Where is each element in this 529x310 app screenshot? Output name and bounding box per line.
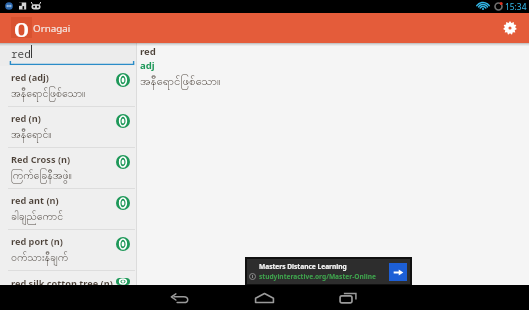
staticText: red silk cotton tree (n) [11, 277, 113, 285]
button[interactable]: Pronounce [116, 196, 130, 210]
button[interactable]: Settings [495, 13, 525, 43]
button[interactable]: Advertisement [246, 258, 411, 285]
button[interactable]: Pronounce [116, 278, 130, 285]
staticText: red (n) [11, 112, 41, 125]
staticText: အနီရောင်ဖြစ်သော။ [11, 87, 86, 103]
staticText: အနီရောင်ဖြစ်သော။ [140, 74, 221, 91]
staticText: red (adj) [11, 71, 49, 84]
staticText: Ornagai [33, 22, 71, 35]
staticText: red [11, 46, 31, 61]
button[interactable]: red (n) [0, 107, 136, 148]
staticText: red ant (n) [11, 194, 59, 207]
staticText: ဝက်သားနီချက် [11, 251, 69, 267]
button[interactable]: Red Cross (n) [0, 148, 136, 189]
button[interactable]: Pronounce [116, 73, 130, 87]
staticText: red port (n) [11, 235, 63, 248]
staticText: adj [140, 59, 155, 72]
staticText: 15:34 [505, 1, 527, 12]
staticText: ကြက်ခြေနီအဖွဲ။ [11, 169, 72, 185]
button[interactable]: red (adj) [0, 66, 136, 107]
button[interactable]: Back [160, 285, 200, 310]
button[interactable]: Pronounce [116, 155, 130, 169]
staticText: ခါချည်ကောင် [11, 210, 64, 226]
button[interactable]: red ant (n) [0, 189, 136, 230]
staticText: O [14, 17, 29, 38]
button[interactable]: red [0, 43, 136, 66]
button[interactable]: red port (n) [0, 230, 136, 271]
button[interactable]: Recent apps [328, 285, 368, 310]
button[interactable]: Pronounce [116, 237, 130, 251]
staticText: red [140, 45, 156, 58]
staticText: အနီရောင်။ [11, 128, 52, 144]
button[interactable]: Home [244, 285, 284, 310]
staticText: studyinteractive.org/Master-Online [259, 272, 376, 281]
staticText: Masters Distance Learning [259, 262, 347, 271]
staticText: Red Cross (n) [11, 153, 71, 166]
button[interactable]: Pronounce [116, 114, 130, 128]
button[interactable]: O [11, 17, 32, 38]
